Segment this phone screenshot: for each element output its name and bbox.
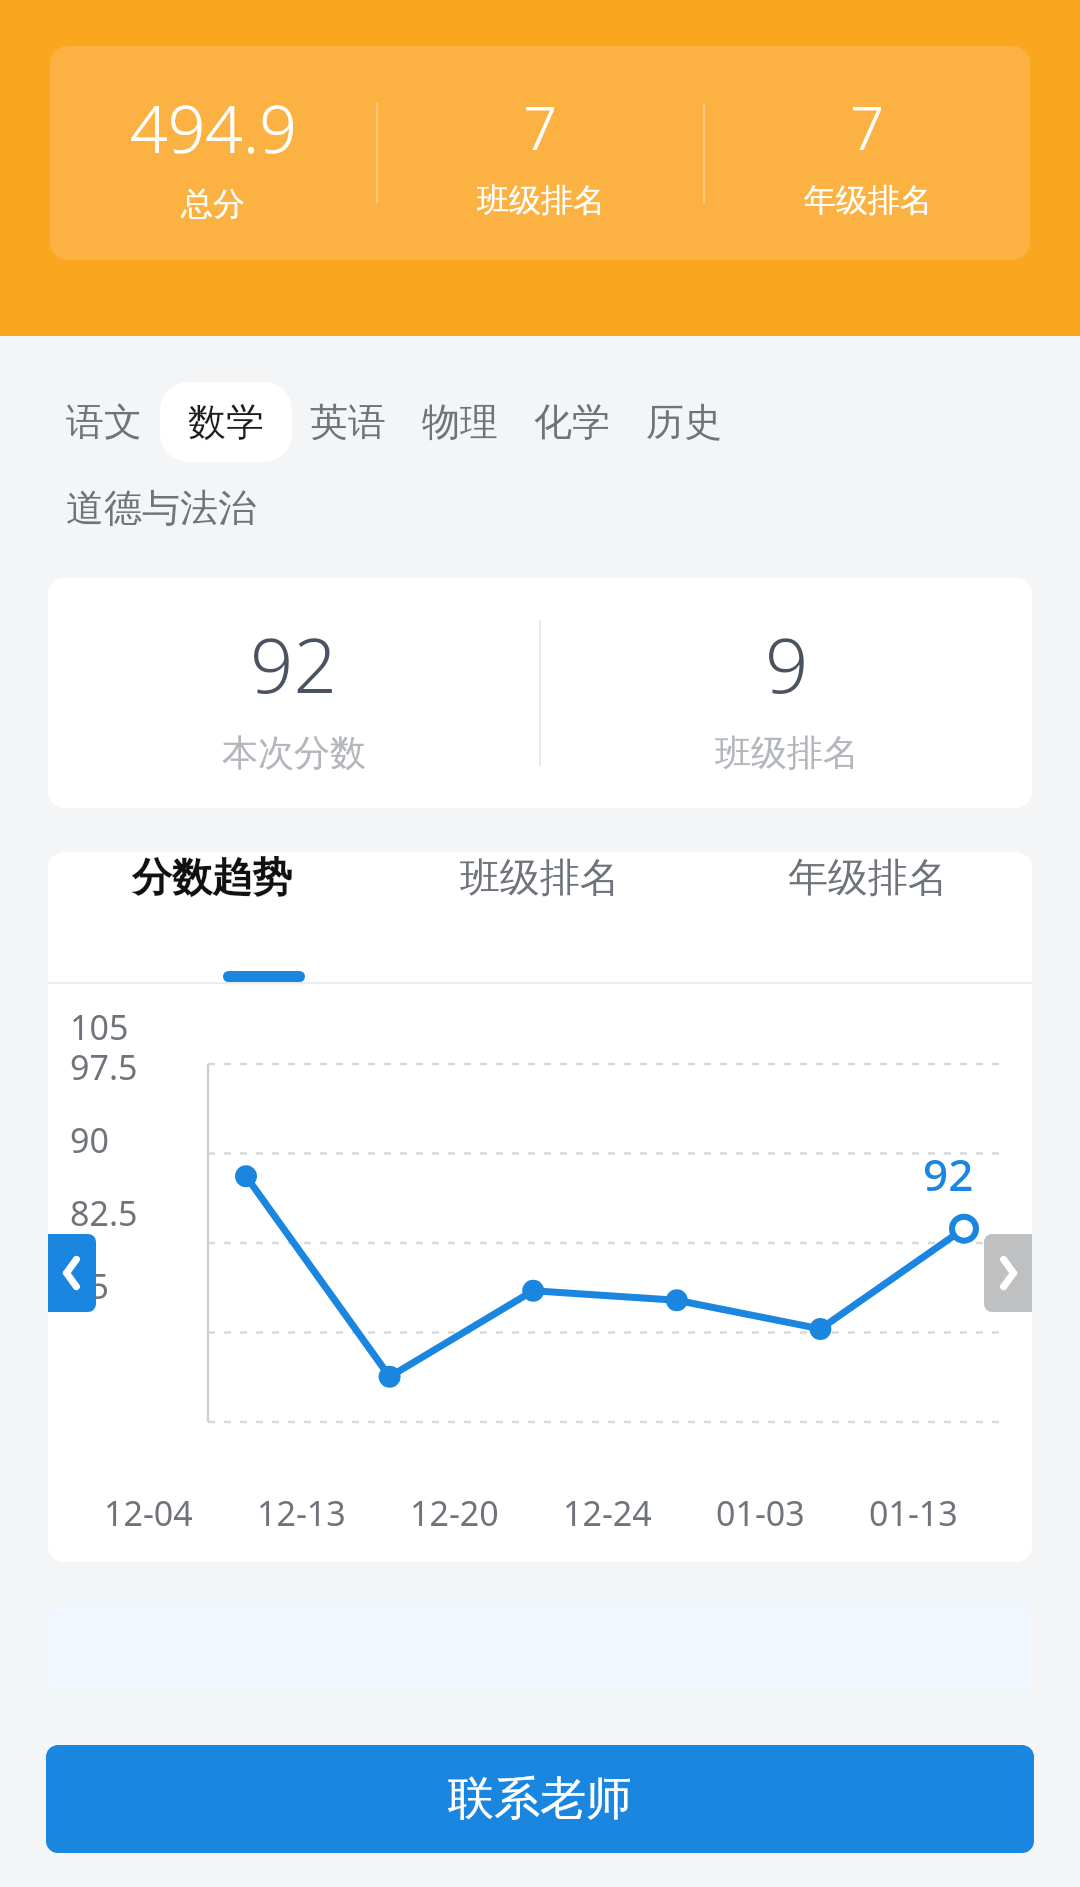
button[interactable]: 化学 (516, 382, 628, 462)
staticText: 494.9 (130, 82, 297, 172)
staticText: 01-13 (869, 1490, 1022, 1536)
button[interactable]: Next (984, 1234, 1032, 1312)
button[interactable]: 年级排名 (704, 852, 1032, 902)
button[interactable]: 语文 (48, 382, 160, 462)
staticText: 本次分数 (222, 730, 366, 775)
staticText: 语文 (66, 398, 142, 446)
button[interactable]: 物理 (404, 382, 516, 462)
staticText: 12-04 (104, 1490, 257, 1536)
staticText: 联系老师 (448, 1770, 632, 1828)
staticText: 12-13 (257, 1490, 410, 1536)
staticText: 道德与法治 (66, 484, 256, 532)
staticText: 化学 (534, 398, 610, 446)
staticText: 数学 (188, 398, 264, 446)
staticText: 82.5 (70, 1190, 138, 1236)
staticText: 物理 (422, 398, 498, 446)
staticText: 105 (70, 1004, 129, 1044)
staticText: 英语 (310, 398, 386, 446)
staticText: 7 (850, 86, 885, 168)
button[interactable]: 92 (48, 612, 539, 775)
button[interactable]: 7 (705, 86, 1030, 220)
button[interactable]: 数学 (160, 382, 292, 462)
staticText: 7 (523, 86, 558, 168)
staticText: 92 (250, 612, 337, 716)
button[interactable]: 联系老师 (46, 1745, 1034, 1853)
staticText: 年级排名 (804, 180, 932, 220)
button[interactable]: 历史 (628, 382, 740, 462)
button[interactable]: 7 (378, 86, 703, 220)
staticText: 班级排名 (460, 852, 620, 902)
button[interactable]: Previous (48, 1234, 96, 1312)
staticText: 年级排名 (788, 852, 948, 902)
button[interactable]: 班级排名 (376, 852, 704, 902)
staticText: 97.5 (70, 1044, 138, 1090)
button[interactable]: 道德与法治 (48, 468, 274, 548)
staticText: 班级排名 (715, 730, 859, 775)
staticText: 90 (70, 1117, 109, 1163)
button[interactable]: 英语 (292, 382, 404, 462)
staticText: 分数趋势 (132, 852, 292, 902)
staticText: 总分 (181, 184, 245, 224)
button[interactable]: 494.9 (50, 82, 376, 224)
staticText: 92 (923, 1144, 974, 1204)
button[interactable]: 分数趋势 (48, 852, 376, 902)
staticText: 12-20 (410, 1490, 563, 1536)
staticText: 75 (70, 1263, 109, 1309)
staticText: 9 (765, 612, 809, 716)
staticText: 历史 (646, 398, 722, 446)
staticText: 班级排名 (477, 180, 605, 220)
staticText: 01-03 (716, 1490, 869, 1536)
button[interactable]: 9 (541, 612, 1032, 775)
staticText: 12-24 (563, 1490, 716, 1536)
